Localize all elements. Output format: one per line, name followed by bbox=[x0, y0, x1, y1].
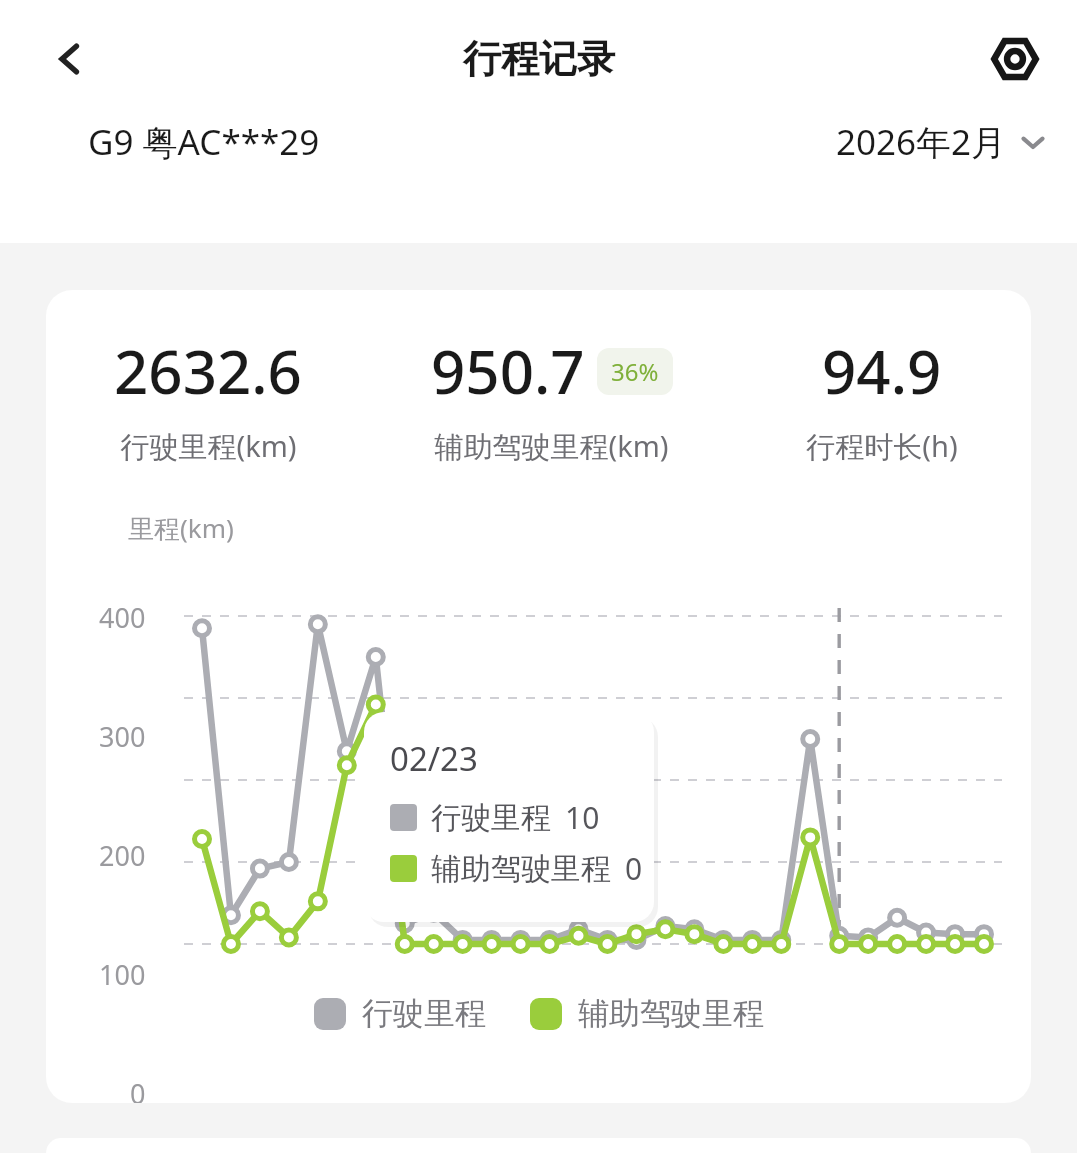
button[interactable]: Settings bbox=[979, 23, 1051, 95]
staticText: 200 bbox=[99, 837, 146, 874]
button[interactable]: 2632.6 bbox=[46, 330, 370, 466]
staticText: 0 bbox=[130, 1075, 146, 1103]
staticText: 2026年2月 bbox=[836, 118, 1007, 166]
staticText: 行驶里程 bbox=[362, 994, 486, 1033]
staticText: 行驶里程(km) bbox=[120, 426, 297, 466]
staticText: 行程时长(h) bbox=[806, 426, 958, 466]
staticText: 辅助驾驶里程 bbox=[431, 850, 611, 888]
staticText: 0 bbox=[625, 848, 643, 889]
staticText: 行程记录 bbox=[463, 35, 615, 83]
button[interactable]: 辅助驾驶里程 bbox=[530, 994, 764, 1033]
button[interactable]: 2026年2月 bbox=[836, 118, 1047, 166]
staticText: 400 bbox=[99, 599, 146, 636]
staticText: 94.9 bbox=[822, 330, 942, 412]
staticText: 950.7 bbox=[431, 330, 585, 412]
staticText: 36% bbox=[611, 355, 659, 388]
staticText: 里程(km) bbox=[128, 510, 234, 546]
staticText: 100 bbox=[99, 956, 146, 993]
staticText: 辅助驾驶里程(km) bbox=[434, 426, 669, 466]
staticText: 2632.6 bbox=[114, 330, 302, 412]
staticText: 10 bbox=[565, 797, 600, 838]
button[interactable]: 行驶里程 bbox=[314, 994, 486, 1033]
button[interactable]: 950.7 bbox=[370, 330, 733, 466]
button[interactable]: G9 粤AC***29 bbox=[88, 118, 320, 166]
button[interactable]: 94.9 bbox=[733, 330, 1031, 466]
staticText: 300 bbox=[99, 718, 146, 755]
staticText: 辅助驾驶里程 bbox=[578, 994, 764, 1033]
staticText: 02/23 bbox=[390, 736, 478, 781]
button[interactable]: Back bbox=[34, 23, 106, 95]
staticText: 行驶里程 bbox=[431, 799, 551, 837]
button[interactable]: 02/23 bbox=[364, 712, 654, 922]
